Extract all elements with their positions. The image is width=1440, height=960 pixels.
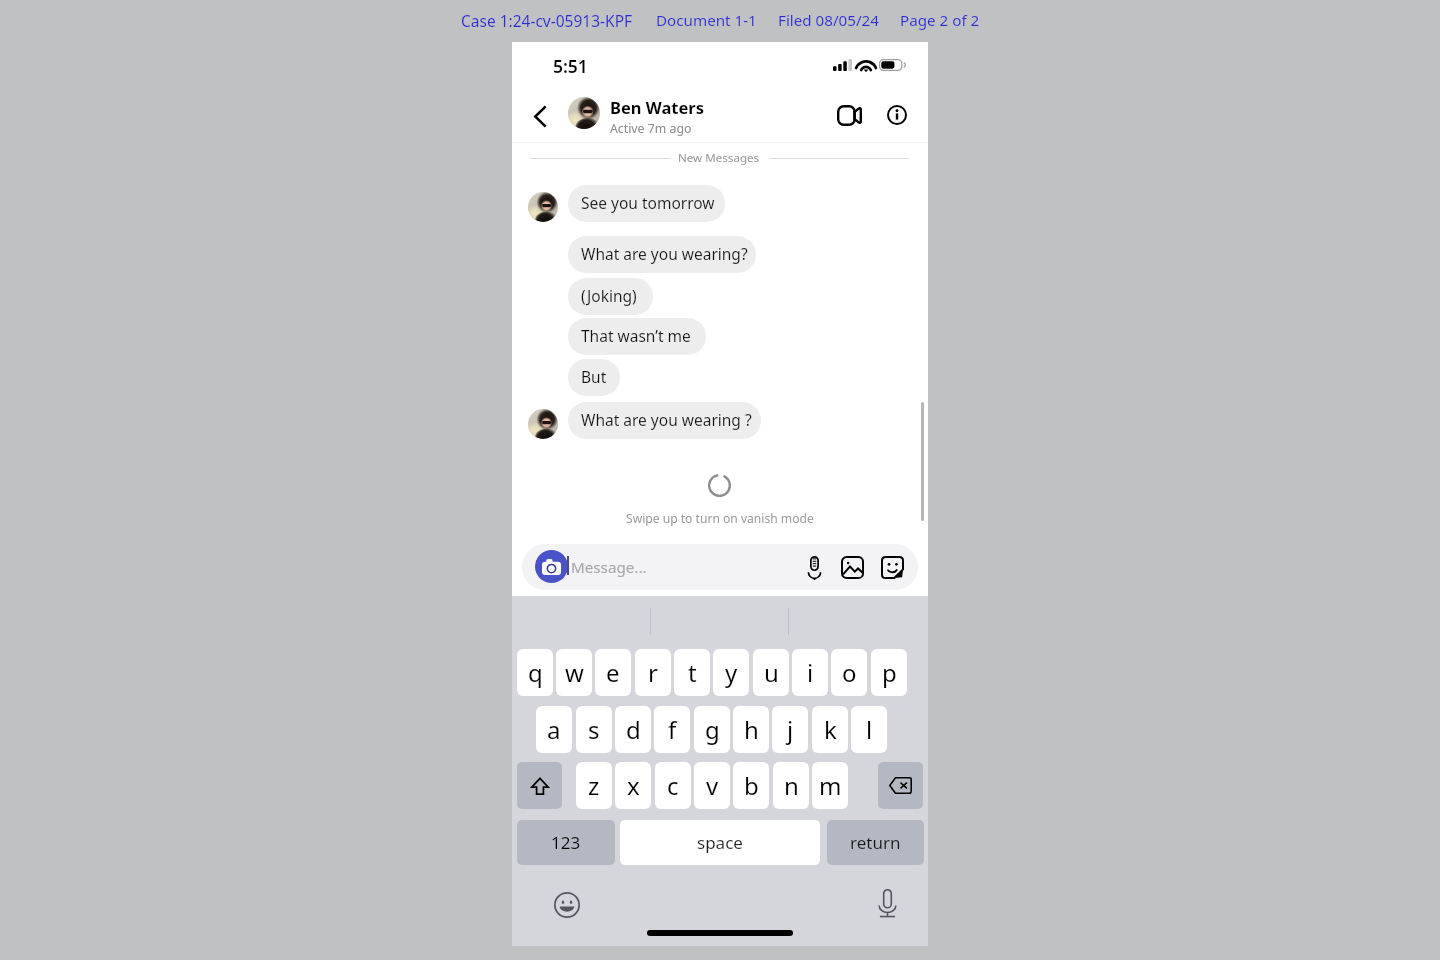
staticText: t	[688, 656, 697, 689]
button[interactable]: e	[595, 649, 631, 696]
button[interactable]: Back	[524, 95, 556, 137]
staticText: space	[697, 831, 743, 854]
staticText: Swipe up to turn on vanish mode	[626, 510, 814, 526]
staticText: v	[706, 769, 719, 802]
staticText: What are you wearing ?	[581, 409, 752, 430]
staticText: That wasn’t me	[581, 325, 691, 346]
button[interactable]: Stickers	[877, 552, 908, 583]
staticText: Ben Waters	[610, 96, 705, 118]
button[interactable]: Emoji keyboard	[550, 888, 584, 922]
button[interactable]: Ben Waters	[610, 96, 705, 137]
staticText: But	[581, 366, 607, 387]
staticText: z	[588, 769, 600, 802]
button[interactable]: y	[713, 649, 749, 696]
button[interactable]: Shift	[517, 762, 562, 809]
button[interactable]: What are you wearing ?	[568, 402, 761, 439]
staticText: w	[565, 656, 584, 689]
button[interactable]: See you tomorrow	[568, 185, 725, 222]
button[interactable]: n	[773, 762, 809, 809]
button[interactable]: i	[792, 649, 828, 696]
button[interactable]: m	[812, 762, 848, 809]
button[interactable]: a	[536, 706, 572, 753]
staticText: m	[819, 769, 842, 802]
staticText: j	[787, 713, 794, 746]
staticText: x	[627, 769, 640, 802]
staticText: Active 7m ago	[610, 120, 692, 137]
staticText: 123	[551, 831, 581, 854]
button[interactable]: d	[615, 706, 651, 753]
button[interactable]: Voice message	[803, 551, 826, 585]
staticText: s	[588, 713, 600, 746]
staticText: b	[744, 769, 759, 802]
button[interactable]: r	[635, 649, 671, 696]
button[interactable]: Camera	[535, 550, 568, 583]
button[interactable]: l	[851, 706, 887, 753]
staticText: return	[850, 831, 901, 854]
staticText: q	[528, 656, 543, 689]
staticText: y	[725, 656, 738, 689]
staticText: h	[744, 713, 759, 746]
button[interactable]: t	[674, 649, 710, 696]
button[interactable]: o	[831, 649, 867, 696]
staticText: (Joking)	[581, 285, 637, 306]
button[interactable]: v	[694, 762, 730, 809]
staticText: Page 2 of 2	[900, 10, 980, 31]
button[interactable]: return	[827, 820, 924, 865]
staticText: 5:51	[553, 54, 588, 78]
button[interactable]: k	[812, 706, 848, 753]
button[interactable]: g	[694, 706, 730, 753]
button[interactable]: 123	[517, 820, 615, 865]
staticText: e	[606, 656, 620, 689]
button[interactable]: q	[517, 649, 553, 696]
button[interactable]: x	[615, 762, 651, 809]
staticText: r	[648, 656, 658, 689]
button[interactable]: (Joking)	[568, 278, 653, 315]
staticText: n	[784, 769, 799, 802]
button[interactable]: b	[733, 762, 769, 809]
button[interactable]: What are you wearing?	[568, 236, 756, 273]
staticText: u	[764, 656, 779, 689]
button[interactable]: p	[871, 649, 907, 696]
button[interactable]: u	[753, 649, 789, 696]
button[interactable]: Gallery	[837, 552, 868, 583]
staticText: What are you wearing?	[581, 243, 748, 264]
staticText: New Messages	[678, 150, 760, 166]
button[interactable]	[568, 97, 600, 129]
staticText: l	[866, 713, 873, 746]
button[interactable]: space	[620, 820, 820, 865]
staticText: g	[705, 713, 720, 746]
staticText: c	[667, 769, 679, 802]
staticText: Document 1-1	[656, 10, 757, 31]
staticText: Message...	[571, 557, 647, 578]
staticText: f	[668, 713, 677, 746]
button[interactable]: But	[568, 359, 620, 396]
staticText: a	[547, 713, 561, 746]
staticText: p	[882, 656, 897, 689]
button[interactable]: Dictation	[871, 886, 903, 920]
staticText: i	[807, 656, 814, 689]
button[interactable]: h	[733, 706, 769, 753]
button[interactable]: Video call	[832, 94, 866, 136]
staticText: See you tomorrow	[581, 192, 715, 213]
button[interactable]: j	[772, 706, 808, 753]
staticText: o	[842, 656, 857, 689]
staticText: Filed 08/05/24	[778, 10, 879, 31]
staticText: Case 1:24-cv-05913-KPF	[461, 10, 633, 31]
staticText: k	[824, 713, 837, 746]
button[interactable]: Details	[880, 94, 914, 136]
button[interactable]: s	[576, 706, 612, 753]
button[interactable]: c	[655, 762, 691, 809]
button[interactable]: w	[556, 649, 592, 696]
staticText: d	[626, 713, 641, 746]
button[interactable]: Backspace	[878, 762, 923, 809]
button[interactable]: That wasn’t me	[568, 318, 706, 355]
button[interactable]: z	[576, 762, 612, 809]
button[interactable]: f	[654, 706, 690, 753]
